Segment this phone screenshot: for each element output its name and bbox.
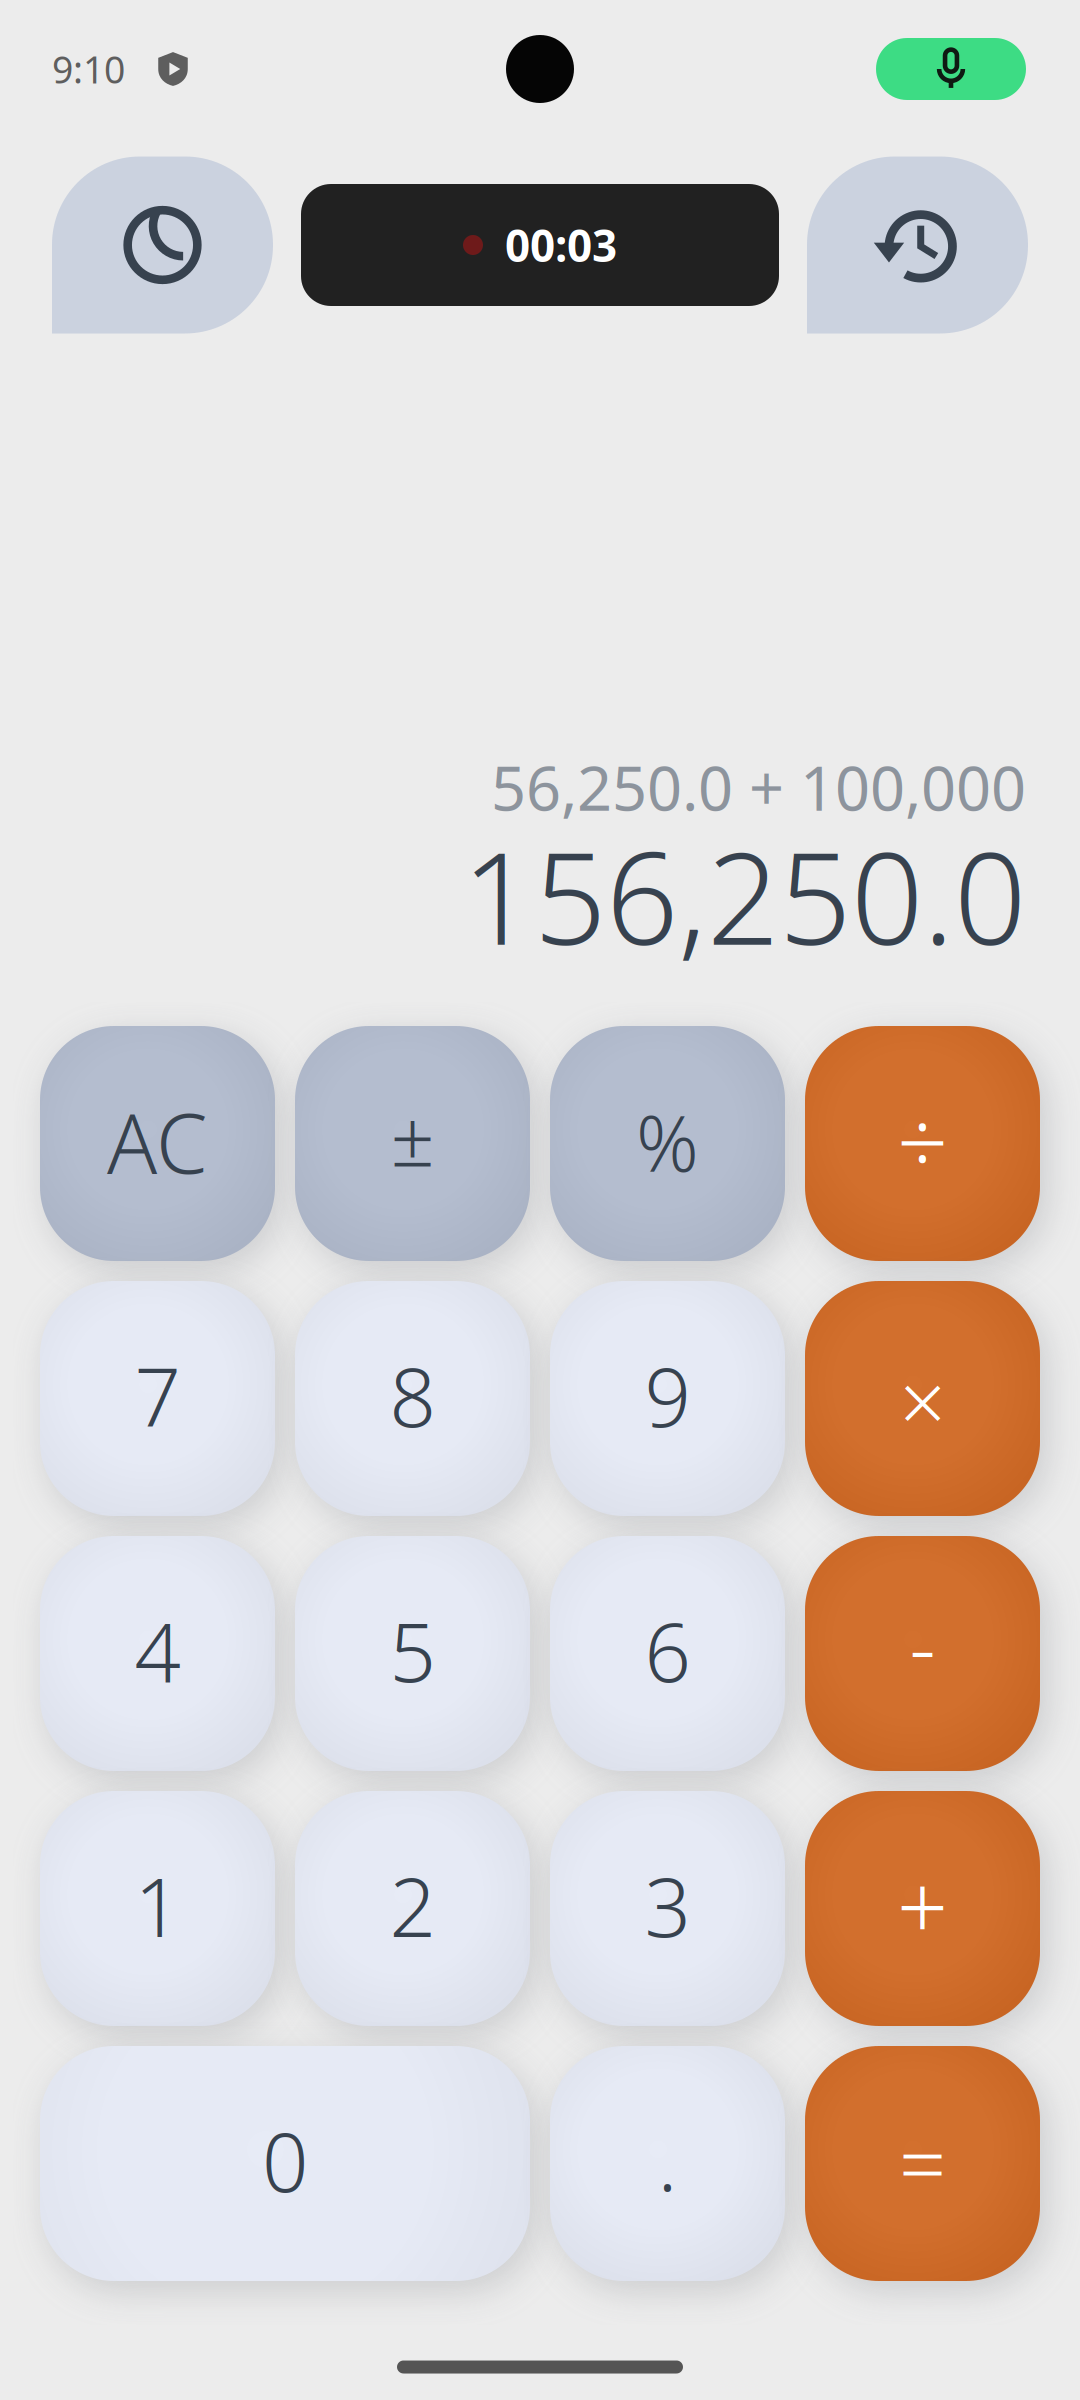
button[interactable]: 0 xyxy=(40,2046,530,2281)
staticText: ÷ xyxy=(897,1081,948,1200)
staticText: - xyxy=(909,1591,935,1699)
staticText: + xyxy=(897,1846,948,1965)
button[interactable]: 2 xyxy=(295,1791,530,2026)
staticText: × xyxy=(899,1346,945,1454)
staticText: . xyxy=(657,2105,677,2213)
button[interactable]: AC xyxy=(40,1026,275,1261)
staticText: 7 xyxy=(134,1341,180,1449)
button[interactable]: = xyxy=(805,2046,1040,2281)
button[interactable]: 8 xyxy=(295,1281,530,1516)
button[interactable]: % xyxy=(550,1026,785,1261)
button[interactable]: ÷ xyxy=(805,1026,1040,1261)
staticText: % xyxy=(636,1090,699,1193)
staticText: 00:03 xyxy=(505,216,617,274)
staticText: 9:10 xyxy=(52,44,125,94)
button[interactable]: × xyxy=(805,1281,1040,1516)
staticText: 5 xyxy=(389,1596,435,1704)
button[interactable]: ± xyxy=(295,1026,530,1261)
staticText: 156,250.0 xyxy=(462,812,1026,980)
staticText: 8 xyxy=(389,1341,435,1449)
button[interactable]: 3 xyxy=(550,1791,785,2026)
staticText: AC xyxy=(107,1087,208,1196)
button[interactable]: 4 xyxy=(40,1536,275,1771)
button[interactable]: 7 xyxy=(40,1281,275,1516)
staticText: 2 xyxy=(389,1851,435,1959)
button[interactable]: - xyxy=(805,1536,1040,1771)
staticText: 4 xyxy=(134,1596,180,1704)
staticText: ± xyxy=(390,1085,434,1188)
button[interactable]: 5 xyxy=(295,1536,530,1771)
staticText: 56,250.0 + 100,000 xyxy=(491,746,1026,828)
staticText: 3 xyxy=(644,1851,690,1959)
staticText: 9 xyxy=(644,1341,690,1449)
button[interactable]: Dark mode xyxy=(52,156,273,333)
button[interactable]: . xyxy=(550,2046,785,2281)
button[interactable]: 6 xyxy=(550,1536,785,1771)
staticText: = xyxy=(899,2108,946,2217)
staticText: 6 xyxy=(644,1596,690,1704)
button[interactable]: History xyxy=(807,156,1028,333)
button[interactable]: 1 xyxy=(40,1791,275,2026)
staticText: 1 xyxy=(134,1851,180,1959)
button[interactable]: 9 xyxy=(550,1281,785,1516)
button[interactable]: + xyxy=(805,1791,1040,2026)
staticText: 0 xyxy=(262,2106,308,2214)
